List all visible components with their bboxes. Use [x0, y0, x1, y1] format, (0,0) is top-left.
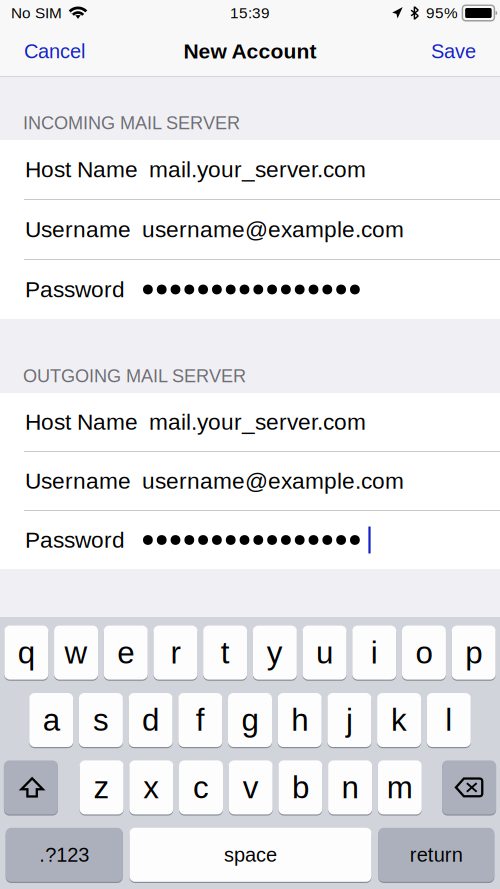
- staticText: Host Name: [25, 409, 138, 435]
- button[interactable]: Save: [420, 26, 487, 76]
- button[interactable]: m: [378, 759, 422, 816]
- staticText: INCOMING MAIL SERVER: [23, 113, 240, 133]
- staticText: return: [410, 844, 463, 866]
- button[interactable]: space: [129, 827, 371, 883]
- staticText: c: [193, 770, 209, 805]
- button[interactable]: v: [229, 759, 273, 816]
- staticText: x: [143, 770, 159, 805]
- staticText: z: [94, 770, 110, 805]
- staticText: Password: [25, 277, 125, 302]
- button[interactable]: Password: [0, 260, 500, 319]
- staticText: Cancel: [24, 40, 85, 62]
- staticText: username@example.com: [142, 217, 404, 242]
- button[interactable]: z: [80, 759, 124, 816]
- staticText: y: [267, 635, 283, 670]
- staticText: q: [18, 635, 35, 670]
- button[interactable]: f: [178, 692, 222, 748]
- button[interactable]: b: [278, 759, 322, 816]
- staticText: mail.your_server.com: [149, 409, 366, 435]
- button[interactable]: Username: [0, 200, 500, 260]
- staticText: Save: [431, 40, 476, 62]
- button[interactable]: g: [228, 692, 272, 748]
- button[interactable]: u: [302, 624, 346, 681]
- button[interactable]: d: [129, 692, 173, 748]
- button[interactable]: k: [377, 692, 421, 748]
- staticText: Host Name: [25, 157, 138, 182]
- staticText: i: [371, 635, 378, 670]
- button[interactable]: Cancel: [13, 26, 96, 76]
- staticText: 95%: [426, 4, 458, 21]
- button[interactable]: h: [278, 692, 322, 748]
- staticText: mail.your_server.com: [149, 157, 366, 182]
- staticText: Username: [25, 217, 131, 242]
- staticText: b: [292, 770, 309, 805]
- staticText: h: [291, 702, 308, 737]
- button[interactable]: n: [328, 759, 372, 816]
- button[interactable]: e: [104, 624, 148, 681]
- staticText: s: [93, 702, 109, 737]
- staticText: Username: [25, 468, 131, 494]
- staticText: New Account: [183, 39, 316, 63]
- staticText: d: [142, 702, 159, 737]
- staticText: space: [224, 844, 277, 866]
- staticText: a: [43, 702, 60, 737]
- button[interactable]: i: [352, 624, 396, 681]
- staticText: o: [415, 635, 432, 670]
- staticText: k: [391, 702, 407, 737]
- button[interactable]: Host Name: [0, 140, 500, 200]
- button[interactable]: l: [427, 692, 471, 748]
- button[interactable]: p: [452, 624, 496, 681]
- staticText: e: [117, 635, 134, 670]
- staticText: 15:39: [230, 4, 270, 21]
- button[interactable]: Host Name: [0, 393, 500, 452]
- button[interactable]: Shift: [4, 759, 58, 816]
- button[interactable]: Delete: [442, 759, 496, 816]
- staticText: v: [243, 770, 259, 805]
- button[interactable]: w: [54, 624, 98, 681]
- staticText: w: [64, 635, 87, 670]
- button[interactable]: x: [129, 759, 173, 816]
- button[interactable]: j: [327, 692, 371, 748]
- staticText: m: [387, 770, 413, 805]
- button[interactable]: o: [402, 624, 446, 681]
- staticText: n: [342, 770, 359, 805]
- button[interactable]: .?123: [6, 827, 123, 883]
- staticText: j: [346, 702, 353, 737]
- button[interactable]: a: [29, 692, 73, 748]
- staticText: .?123: [39, 844, 89, 866]
- button[interactable]: c: [179, 759, 223, 816]
- button[interactable]: t: [203, 624, 247, 681]
- staticText: OUTGOING MAIL SERVER: [23, 366, 246, 386]
- button[interactable]: r: [153, 624, 197, 681]
- staticText: l: [445, 702, 452, 737]
- button[interactable]: return: [378, 827, 494, 883]
- staticText: Password: [25, 527, 125, 553]
- staticText: r: [170, 635, 180, 670]
- staticText: t: [221, 635, 230, 670]
- staticText: g: [241, 702, 258, 737]
- staticText: f: [196, 702, 205, 737]
- staticText: p: [465, 635, 482, 670]
- button[interactable]: Password: [0, 511, 500, 569]
- staticText: No SIM: [11, 4, 62, 21]
- button[interactable]: q: [4, 624, 48, 681]
- button[interactable]: s: [79, 692, 123, 748]
- button[interactable]: y: [253, 624, 297, 681]
- button[interactable]: Username: [0, 452, 500, 511]
- staticText: username@example.com: [142, 468, 404, 494]
- staticText: u: [316, 635, 333, 670]
